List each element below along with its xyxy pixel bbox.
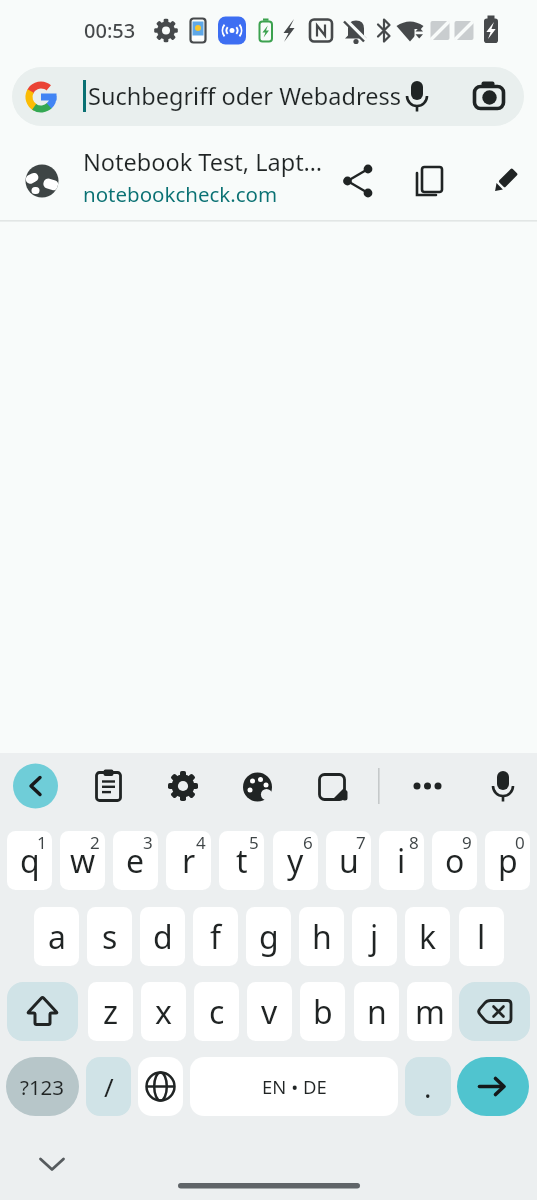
button[interactable]: x (141, 982, 186, 1041)
button[interactable]: u (326, 831, 371, 890)
staticText: l (477, 915, 486, 959)
staticText: f (210, 915, 222, 959)
button[interactable] (28, 1142, 74, 1186)
staticText: o (445, 839, 465, 883)
button[interactable] (160, 763, 206, 809)
button[interactable] (235, 763, 281, 809)
button[interactable]: e (113, 831, 158, 890)
button[interactable]: v (247, 982, 292, 1041)
button[interactable]: f (193, 907, 238, 966)
button[interactable] (457, 1057, 529, 1116)
staticText: c (209, 990, 225, 1034)
staticText: g (259, 915, 279, 959)
staticText: notebookcheck.com (83, 180, 278, 208)
button[interactable] (482, 158, 528, 204)
staticText: 7 (356, 831, 366, 854)
button[interactable] (13, 763, 59, 809)
button[interactable] (309, 763, 355, 809)
staticText: d (153, 915, 173, 959)
staticText: p (498, 839, 518, 883)
staticText: i (397, 839, 406, 883)
staticText: 9 (462, 831, 472, 854)
button[interactable]: s (87, 907, 132, 966)
button[interactable]: / (86, 1057, 131, 1116)
staticText: r (182, 839, 196, 883)
staticText: 8 (409, 831, 419, 854)
button[interactable]: d (140, 907, 185, 966)
button[interactable]: g (246, 907, 291, 966)
button[interactable]: m (407, 982, 452, 1041)
button[interactable]: b (300, 982, 345, 1041)
button[interactable] (466, 72, 512, 120)
button[interactable]: j (352, 907, 397, 966)
staticText: k (419, 915, 437, 959)
staticText: 3 (143, 831, 153, 854)
staticText: w (70, 839, 96, 883)
button[interactable]: . (405, 1057, 451, 1116)
button[interactable]: EN • DE (190, 1057, 398, 1116)
staticText: y (287, 839, 304, 883)
staticText: 5 (249, 831, 259, 854)
staticText: s (102, 915, 118, 959)
staticText: Notebook Test, Lapt… (83, 146, 323, 178)
button[interactable]: r (166, 831, 211, 890)
button[interactable]: c (194, 982, 239, 1041)
button[interactable]: t (219, 831, 264, 890)
button[interactable]: ?123 (6, 1057, 79, 1116)
staticText: / (104, 1069, 114, 1104)
button[interactable]: a (34, 907, 79, 966)
staticText: 0 (515, 831, 525, 854)
staticText: 1 (37, 831, 47, 854)
button[interactable]: l (459, 907, 504, 966)
button[interactable] (335, 158, 381, 204)
button[interactable] (394, 72, 440, 120)
button[interactable]: z (88, 982, 133, 1041)
staticText: a (48, 915, 66, 959)
staticText: u (339, 839, 359, 883)
staticText: 4 (196, 831, 206, 854)
staticText: j (370, 915, 379, 959)
staticText: 6 (303, 831, 313, 854)
button[interactable] (0, 140, 330, 220)
staticText: q (20, 839, 40, 883)
staticText: m (415, 990, 445, 1034)
staticText: 00:53 (84, 17, 136, 44)
button[interactable] (86, 763, 132, 809)
button[interactable]: k (405, 907, 450, 966)
staticText: n (367, 990, 387, 1034)
button[interactable] (406, 158, 452, 204)
staticText: b (313, 990, 333, 1034)
button[interactable]: n (354, 982, 399, 1041)
button[interactable] (459, 982, 530, 1041)
button[interactable] (405, 763, 451, 809)
button[interactable]: y (273, 831, 318, 890)
button[interactable] (7, 982, 78, 1041)
staticText: EN • DE (262, 1074, 327, 1099)
button[interactable] (12, 67, 524, 126)
button[interactable]: o (432, 831, 477, 890)
button[interactable]: p (485, 831, 530, 890)
staticText: z (103, 990, 119, 1034)
button[interactable] (480, 763, 526, 809)
staticText: t (236, 839, 248, 883)
staticText: e (126, 839, 145, 883)
staticText: h (312, 915, 332, 959)
staticText: v (261, 990, 278, 1034)
button[interactable]: w (60, 831, 105, 890)
button[interactable]: h (299, 907, 344, 966)
button[interactable] (138, 1057, 183, 1116)
staticText: . (424, 1068, 432, 1106)
button[interactable]: i (379, 831, 424, 890)
button[interactable]: q (7, 831, 52, 890)
staticText: x (155, 990, 172, 1034)
staticText: ?123 (20, 1073, 65, 1101)
staticText: Suchbegriff oder Webadress (88, 80, 401, 112)
staticText: 2 (90, 831, 100, 854)
